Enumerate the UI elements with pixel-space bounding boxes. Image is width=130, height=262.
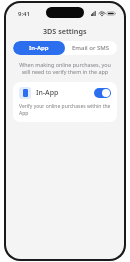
staticText: In-App <box>36 88 59 98</box>
button[interactable]: In-App <box>13 82 117 122</box>
staticText: 9:41 <box>18 10 30 18</box>
staticText: Verify your online purchases within the … <box>19 103 111 117</box>
staticText: Email or SMS <box>72 44 110 52</box>
button[interactable]: In-App verification toggle, on <box>94 88 111 98</box>
staticText: In-App <box>29 44 49 52</box>
staticText: 3DS settings <box>43 26 87 36</box>
button[interactable]: Email or SMS <box>65 41 117 55</box>
staticText: When making online purchases, you will n… <box>16 61 114 76</box>
button[interactable]: In-App <box>13 41 65 55</box>
